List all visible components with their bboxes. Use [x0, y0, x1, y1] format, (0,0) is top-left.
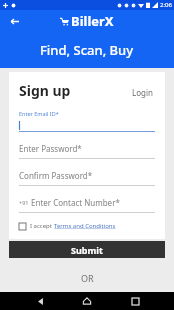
button[interactable]: Back — [32, 293, 48, 309]
button[interactable]: Recent apps — [127, 293, 143, 309]
staticText: Sign up — [19, 81, 71, 100]
staticText: Confirm Password* — [19, 170, 93, 181]
staticText: Enter Email ID* — [19, 110, 59, 117]
staticText: I accept — [30, 222, 54, 230]
staticText: Find, Scan, Buy — [40, 41, 134, 59]
button[interactable]: Back — [6, 13, 22, 29]
staticText: Submit — [71, 244, 103, 256]
button[interactable]: Enter Email ID* — [19, 110, 155, 132]
staticText: Enter Contact Number* — [31, 197, 120, 208]
staticText: Login — [132, 87, 153, 98]
button[interactable]: Home — [79, 293, 95, 309]
button[interactable]: +91 — [19, 197, 155, 213]
staticText: BillerX — [71, 12, 114, 30]
button[interactable]: Enter Password* — [19, 143, 155, 159]
button[interactable]: Confirm Password* — [19, 170, 155, 186]
button[interactable]: Submit — [9, 241, 165, 258]
staticText: Terms and Conditions — [54, 222, 116, 230]
staticText: +91 — [19, 199, 29, 206]
staticText: Enter Password* — [19, 143, 82, 154]
button[interactable]: Login — [130, 85, 155, 100]
button[interactable]: I accept — [19, 222, 155, 230]
staticText: OR — [81, 272, 94, 284]
staticText: 2:06 — [160, 1, 172, 9]
